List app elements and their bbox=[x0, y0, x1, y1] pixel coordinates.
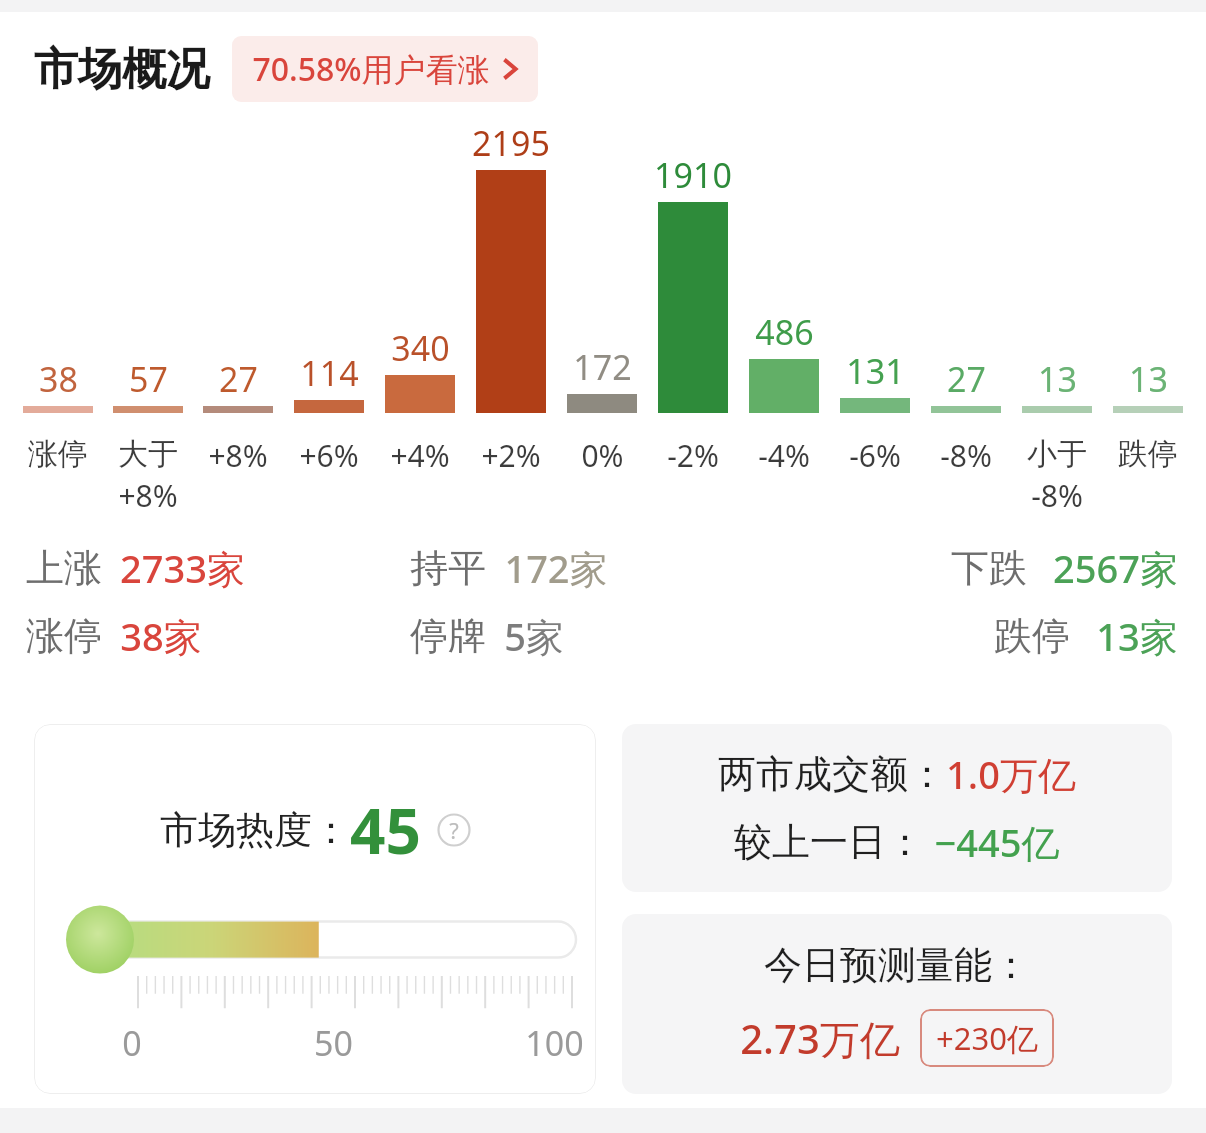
staticText: 今日预测量能： bbox=[764, 941, 1030, 989]
staticText: 2733家 bbox=[120, 542, 245, 594]
staticText: 市场热度： bbox=[160, 806, 350, 854]
staticText: -8% bbox=[1031, 475, 1083, 516]
staticText: 小于 bbox=[1027, 435, 1087, 473]
staticText: 57 bbox=[129, 356, 168, 402]
staticText: 13 bbox=[1129, 356, 1168, 402]
staticText: 13 bbox=[1038, 356, 1077, 402]
staticText: 131 bbox=[846, 348, 905, 394]
staticText: 2.73万亿 bbox=[740, 1011, 900, 1066]
button[interactable]: 市场热度： bbox=[34, 724, 596, 1094]
staticText: 0 bbox=[122, 1020, 142, 1066]
staticText: 38家 bbox=[120, 610, 202, 662]
staticText: 大于 bbox=[118, 435, 178, 473]
staticText: 27 bbox=[219, 356, 258, 402]
staticText: +4% bbox=[390, 435, 450, 476]
staticText: -4% bbox=[758, 435, 810, 476]
staticText: 100 bbox=[525, 1020, 584, 1066]
staticText: 涨停 bbox=[26, 612, 102, 660]
staticText: 跌停 bbox=[1118, 435, 1178, 473]
staticText: 38 bbox=[39, 356, 78, 402]
staticText: +8% bbox=[118, 475, 178, 516]
staticText: 1910 bbox=[654, 152, 732, 198]
button[interactable]: 今日预测量能： bbox=[622, 914, 1172, 1094]
staticText: 114 bbox=[300, 350, 359, 396]
staticText: 50 bbox=[314, 1020, 353, 1066]
staticText: 1.0万亿 bbox=[946, 748, 1076, 800]
staticText: 13家 bbox=[1096, 610, 1178, 662]
staticText: 45 bbox=[350, 788, 421, 872]
staticText: 两市成交额： bbox=[718, 750, 946, 798]
staticText: 486 bbox=[755, 309, 814, 355]
staticText: 停牌 bbox=[410, 612, 486, 660]
staticText: 0% bbox=[581, 435, 624, 476]
staticText: 172 bbox=[573, 344, 632, 390]
staticText: 172家 bbox=[504, 542, 608, 594]
staticText: 上涨 bbox=[26, 544, 102, 592]
staticText: 市场概况 bbox=[34, 42, 210, 97]
staticText: -6% bbox=[849, 435, 901, 476]
button[interactable]: +230亿 bbox=[920, 1009, 1054, 1067]
staticText: 跌停 bbox=[994, 612, 1070, 660]
staticText: −445亿 bbox=[934, 816, 1060, 868]
staticText: 下跌 bbox=[951, 544, 1027, 592]
staticText: 70.58%用户看涨 bbox=[252, 47, 490, 91]
staticText: +2% bbox=[481, 435, 541, 476]
staticText: ? bbox=[449, 815, 459, 845]
staticText: +6% bbox=[299, 435, 359, 476]
staticText: -8% bbox=[940, 435, 992, 476]
staticText: 较上一日： bbox=[734, 818, 924, 866]
staticText: 5家 bbox=[504, 610, 564, 662]
staticText: 涨停 bbox=[28, 435, 88, 473]
button[interactable]: 帮助 bbox=[437, 813, 471, 847]
staticText: +230亿 bbox=[936, 1017, 1038, 1059]
staticText: -2% bbox=[667, 435, 719, 476]
staticText: 2195 bbox=[472, 120, 550, 166]
staticText: +8% bbox=[208, 435, 268, 476]
staticText: 2567家 bbox=[1053, 542, 1178, 594]
button[interactable]: 两市成交额： bbox=[622, 724, 1172, 892]
button[interactable]: 70.58%用户看涨 bbox=[232, 36, 538, 102]
staticText: 340 bbox=[391, 325, 450, 371]
staticText: 27 bbox=[947, 356, 986, 402]
staticText: 持平 bbox=[410, 544, 486, 592]
